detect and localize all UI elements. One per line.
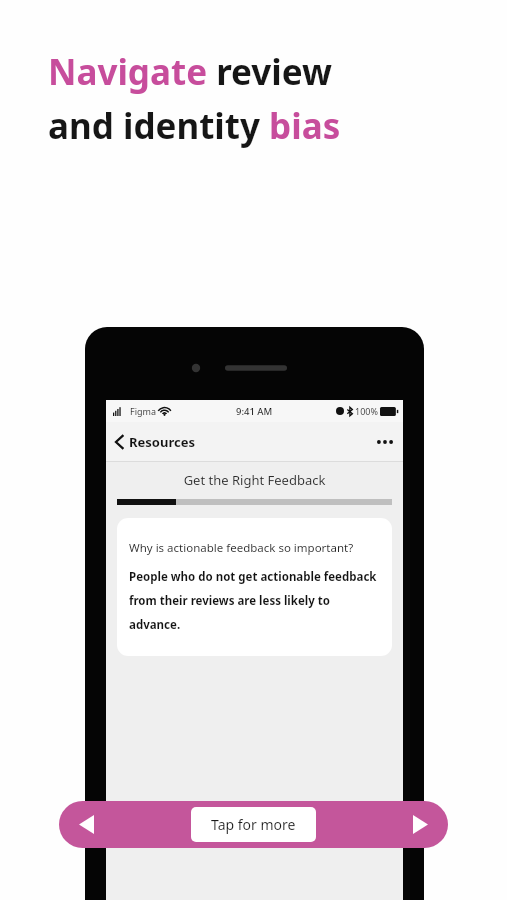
button[interactable]: Previous [59,803,114,846]
staticText: and identity bias [48,102,341,150]
staticText: Get the Right Feedback [106,471,403,489]
staticText: 100% [355,405,378,417]
button[interactable]: More options [367,430,403,454]
staticText: Resources [129,433,195,451]
staticText: Tap for more [211,815,296,834]
staticText: 9:41 AM [236,405,273,418]
button[interactable]: Resources [106,427,203,457]
staticText: Why is actionable feedback so important? [129,540,354,556]
staticText: People who do not get actionable feedbac… [129,569,380,632]
button[interactable]: Next [393,803,448,846]
button[interactable]: Tap for more [191,807,316,842]
staticText: Navigate review [48,48,332,96]
button[interactable]: Why is actionable feedback so important? [117,518,392,656]
staticText: Figma [130,405,156,417]
